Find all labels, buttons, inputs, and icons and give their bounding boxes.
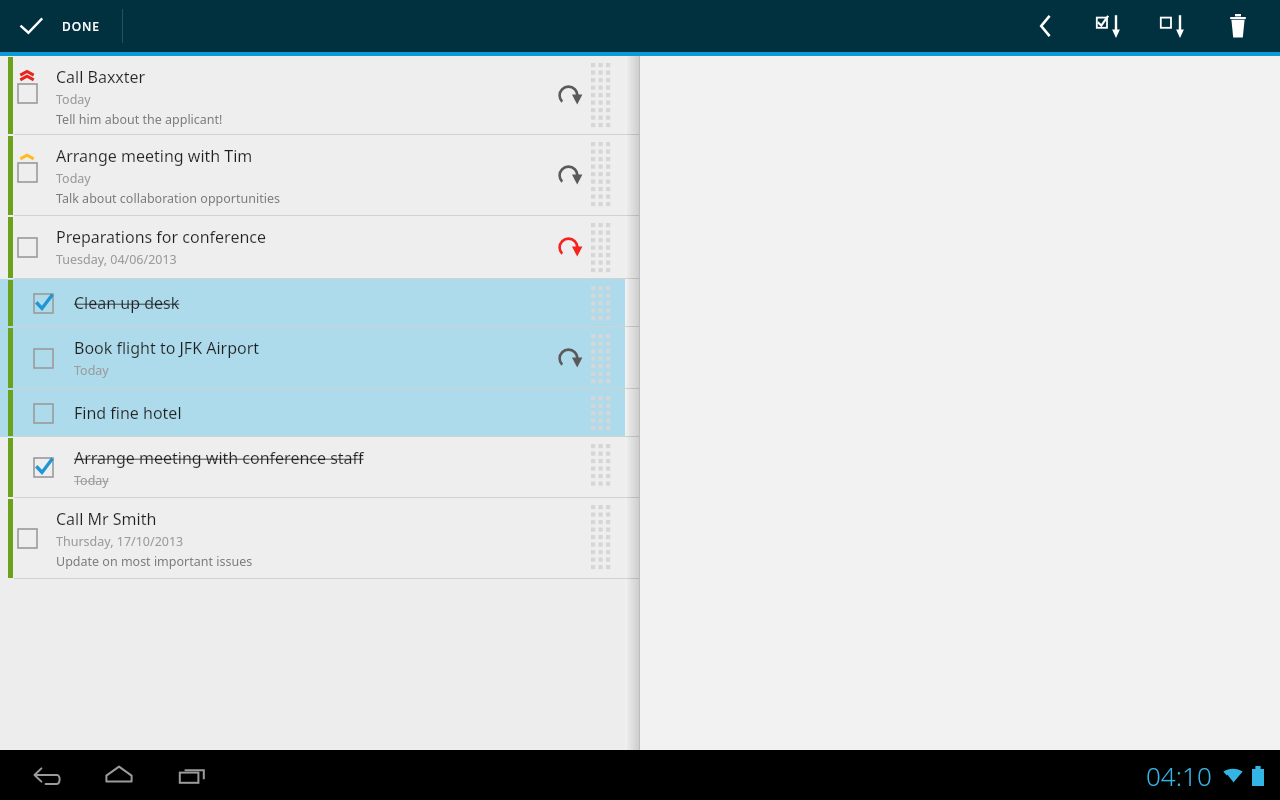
button[interactable]: Mark complete: [0, 327, 625, 389]
button[interactable]: DONE: [0, 0, 118, 52]
staticText: Talk about collaboration opportunities: [56, 190, 280, 207]
other: Reorder: [591, 221, 613, 274]
button[interactable]: Completed: [34, 458, 53, 477]
staticText: Arrange meeting with Tim: [56, 145, 253, 167]
staticText: Tell him about the applicant!: [56, 111, 223, 128]
button[interactable]: Recent apps: [170, 752, 216, 798]
button[interactable]: Completed: [0, 279, 625, 327]
button[interactable]: Mark complete: [0, 216, 625, 279]
staticText: Clean up desk: [74, 292, 180, 314]
button[interactable]: Back: [1014, 0, 1078, 52]
button[interactable]: Completed: [34, 294, 53, 313]
staticText: Tuesday, 04/06/2013: [56, 251, 177, 268]
button[interactable]: Mark complete: [18, 84, 37, 103]
staticText: Today: [56, 170, 91, 187]
other: Reorder: [591, 503, 613, 574]
staticText: Update on most important issues: [56, 553, 253, 570]
staticText: DONE: [62, 18, 100, 34]
other: Reorder: [591, 140, 613, 211]
button[interactable]: Mark complete: [34, 404, 53, 423]
other: Reorder: [591, 394, 613, 432]
staticText: Call Baxxter: [56, 66, 146, 88]
button[interactable]: Completed: [0, 437, 625, 498]
button[interactable]: Mark complete: [18, 163, 37, 182]
button[interactable]: Mark complete: [0, 498, 625, 579]
button[interactable]: Mark complete: [18, 238, 37, 257]
other: Reorder: [591, 332, 613, 384]
staticText: Today: [56, 91, 91, 108]
button[interactable]: Delete: [1206, 0, 1270, 52]
other: Reorder: [591, 442, 613, 493]
button[interactable]: Mark complete: [0, 135, 625, 216]
staticText: Call Mr Smith: [56, 508, 157, 530]
button[interactable]: Back: [22, 752, 68, 798]
other: Reorder: [591, 61, 613, 130]
staticText: Today: [74, 362, 109, 379]
staticText: Find fine hotel: [74, 402, 182, 424]
staticText: Preparations for conference: [56, 226, 267, 248]
staticText: 04:10: [1146, 758, 1212, 793]
button[interactable]: Mark complete: [34, 349, 53, 368]
button[interactable]: Uncheck all: [1142, 0, 1206, 52]
button[interactable]: Mark complete: [0, 389, 625, 437]
other: Reorder: [591, 284, 613, 322]
button[interactable]: Check all: [1078, 0, 1142, 52]
staticText: Today: [74, 472, 109, 489]
staticText: Thursday, 17/10/2013: [56, 533, 184, 550]
button[interactable]: Mark complete: [18, 529, 37, 548]
button[interactable]: Mark complete: [0, 56, 625, 135]
button[interactable]: Home: [96, 752, 142, 798]
staticText: Arrange meeting with conference staff: [74, 447, 364, 469]
staticText: Book flight to JFK Airport: [74, 337, 260, 359]
